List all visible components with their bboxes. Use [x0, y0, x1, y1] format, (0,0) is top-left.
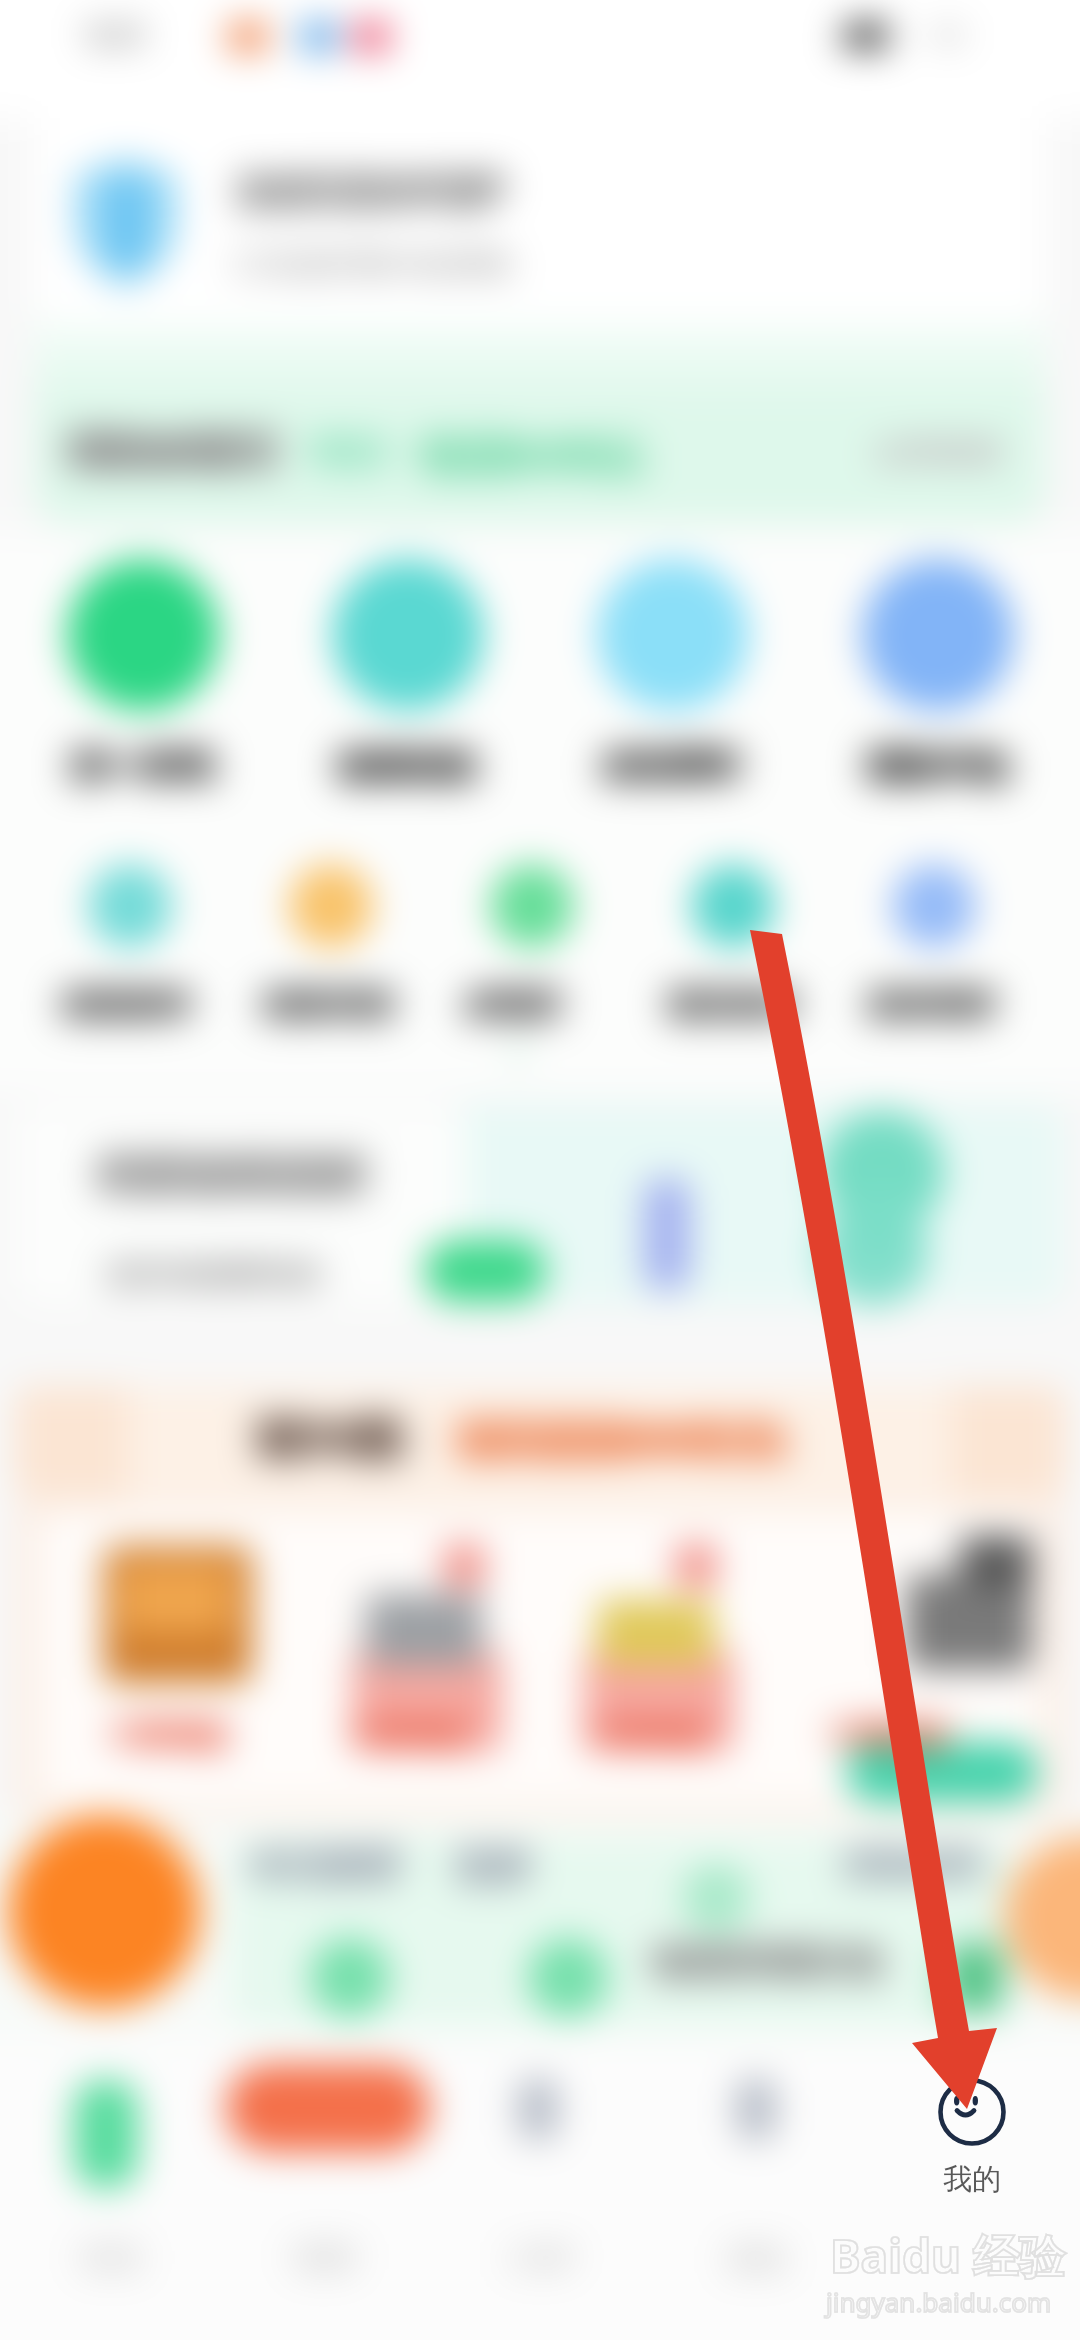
staticText: 收能量领红包	[654, 1936, 882, 1984]
staticText: 花呗借呗	[663, 988, 787, 1027]
staticText: 9:41	[90, 14, 150, 55]
staticText: 已为您拦截12次风险	[236, 242, 511, 283]
staticText: 基金理财	[864, 984, 988, 1023]
staticText: 扫一扫码	[69, 744, 205, 787]
staticText: 支付宝安全守护	[236, 168, 502, 216]
staticText: 余额宝	[474, 984, 567, 1023]
staticText: 9:41	[84, 14, 144, 55]
staticText: 去查看看	[880, 432, 1008, 472]
staticText: 最高优惠888红包	[458, 1410, 783, 1467]
staticText: 收钱付款	[346, 744, 482, 787]
staticText: 出行乘车	[611, 744, 747, 787]
staticText: ￥39.9起	[109, 1712, 229, 1753]
staticText: 最高优惠888红包	[464, 1410, 789, 1467]
staticText: ￥39.9起	[823, 1716, 943, 1757]
staticText: 昨日	[314, 430, 386, 475]
staticText: 花呗借呗	[675, 984, 799, 1023]
staticText: 去查看看	[868, 432, 996, 472]
staticText: 我的卡包	[870, 744, 1006, 787]
staticText: 扫一扫码	[81, 744, 217, 787]
staticText: 余额宝	[468, 984, 561, 1023]
staticText: 我的卡包	[864, 744, 1000, 787]
staticText: 双11抢	[258, 1406, 403, 1469]
staticText: 蚂蚁森林	[72, 984, 196, 1023]
staticText: 支付宝安全守护	[242, 168, 508, 216]
staticText: 支付宝安全守护	[230, 168, 496, 216]
staticText: ￥39.9起	[583, 1712, 703, 1753]
staticText: ￥39.9起	[349, 1712, 469, 1753]
staticText: 昨日	[320, 430, 392, 475]
staticText: 余额宝	[462, 984, 555, 1023]
staticText: ￥39.9起	[355, 1712, 475, 1753]
staticText: 我的卡包	[864, 748, 1000, 791]
staticText: 查看全部	[840, 1842, 976, 1885]
staticText: ￥39.9起	[595, 1712, 715, 1753]
staticText: 今日推荐	[250, 1840, 402, 1888]
staticText: 蚂蚁森林提醒	[94, 1148, 358, 1203]
staticText: ￥39.9起	[589, 1712, 709, 1753]
staticText: 扫一扫码	[75, 744, 211, 787]
staticText: 双11抢	[264, 1406, 409, 1469]
staticText: 蚂蚁森林提醒	[100, 1148, 364, 1203]
staticText: 花呗借呗	[663, 984, 787, 1023]
staticText: 您有3份能量待收	[116, 1252, 329, 1290]
staticText: 4G	[840, 16, 882, 60]
staticText: 今日推荐	[256, 1840, 408, 1888]
staticText: 收益0.68元	[428, 424, 648, 484]
staticText: 收能量领红包	[660, 1936, 888, 1984]
staticText: ￥39.9起	[829, 1712, 949, 1753]
staticText: 收能量领红包	[648, 1940, 876, 1988]
staticText: 蚂蚁庄园	[261, 984, 385, 1023]
button[interactable]: 我的	[864, 2065, 1080, 2235]
staticText: 您有3份能量待收	[110, 1252, 323, 1290]
staticText: Baidu 经验	[830, 2224, 1065, 2287]
staticText: 蚂蚁森林	[60, 984, 184, 1023]
staticText: 蚂蚁森林	[66, 984, 190, 1023]
staticText: 今日推荐	[244, 1844, 396, 1892]
staticText: 我的	[943, 2161, 1001, 2198]
staticText: 更多	[452, 1844, 528, 1892]
staticText: 出行乘车	[605, 744, 741, 787]
staticText: ￥39.9起	[343, 1716, 463, 1757]
staticText: 蚂蚁庄园	[267, 984, 391, 1023]
staticText: 基金理财	[876, 984, 1000, 1023]
staticText: 收益0.68元	[422, 424, 642, 484]
staticText: 我的余额宝	[68, 426, 278, 479]
staticText: 今日推荐	[244, 1840, 396, 1888]
staticText: ￥39.9起	[115, 1712, 235, 1753]
staticText: 收钱付款	[334, 744, 470, 787]
staticText: 出行乘车	[599, 744, 735, 787]
staticText: ￥39.9起	[835, 1712, 955, 1753]
staticText: 出行乘车	[599, 748, 735, 791]
staticText: 我的余额宝	[74, 426, 284, 479]
staticText: 收钱付款	[334, 748, 470, 791]
staticText: 查看全部	[846, 1842, 982, 1885]
staticText: 4G	[852, 12, 894, 56]
staticText: ￥39.9起	[103, 1716, 223, 1757]
staticText: 您有3份能量待收	[104, 1252, 317, 1290]
staticText: ￥39.9起	[103, 1712, 223, 1753]
staticText: jingyan.baidu.com	[826, 2284, 1052, 2319]
staticText: 已为您拦截12次风险	[230, 242, 505, 283]
staticText: ￥39.9起	[823, 1712, 943, 1753]
staticText: 余额宝	[462, 988, 555, 1027]
staticText: 蚂蚁庄园	[261, 988, 385, 1027]
other: 我的	[937, 2077, 1007, 2147]
staticText: 收益0.68元	[416, 424, 636, 484]
staticText: 4G	[846, 12, 888, 56]
staticText: 查看全部	[840, 1846, 976, 1889]
staticText: 昨日	[308, 430, 380, 475]
